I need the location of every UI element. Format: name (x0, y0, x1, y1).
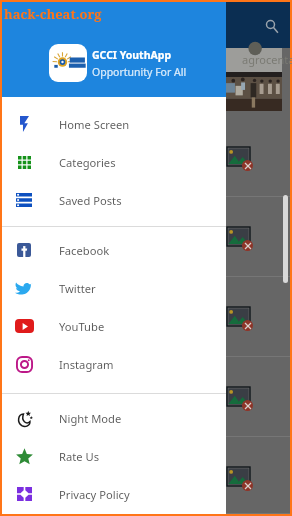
button[interactable]: Night Mode (2, 399, 226, 437)
button[interactable]: Categories (2, 143, 226, 181)
button[interactable]: Saved Posts (2, 181, 226, 219)
button[interactable]: Twitter (2, 269, 226, 307)
staticText: Night Mode (59, 411, 122, 426)
button[interactable]: Privacy Policy (2, 475, 226, 513)
button[interactable]: Instagram (2, 345, 226, 383)
staticText: Instagram (59, 357, 114, 372)
staticText: hack-cheat.org (4, 5, 102, 23)
button[interactable]: Search (260, 12, 286, 38)
button[interactable]: Rate Us (2, 437, 226, 475)
staticText: Opportunity For All (92, 65, 187, 79)
staticText: Categories (59, 155, 116, 170)
staticText: Saved Posts (59, 193, 122, 208)
button[interactable]: Home Screen (2, 105, 226, 143)
staticText: Privacy Policy (59, 487, 130, 502)
staticText: agrocenta (242, 52, 292, 67)
staticText: Facebook (59, 243, 110, 258)
staticText: GCCI YouthApp (92, 48, 172, 62)
staticText: YouTube (59, 319, 105, 334)
staticText: Home Screen (59, 117, 130, 132)
staticText: Rate Us (59, 449, 100, 464)
staticText: Twitter (59, 281, 96, 296)
button[interactable]: Facebook (2, 231, 226, 269)
button[interactable]: YouTube (2, 307, 226, 345)
